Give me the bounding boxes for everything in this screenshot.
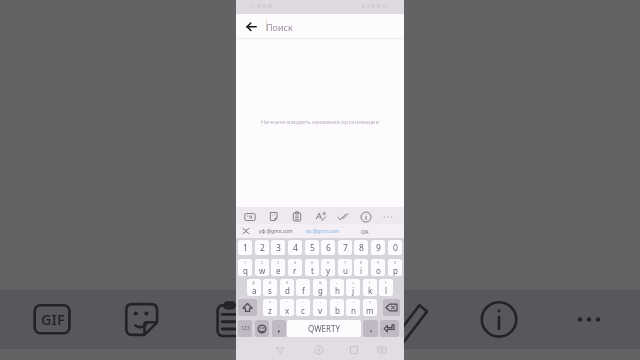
button[interactable]: ; xyxy=(330,299,344,316)
staticText: ) xyxy=(385,280,387,285)
staticText: j xyxy=(352,285,355,296)
staticText: d xyxy=(285,285,290,296)
button[interactable]: : xyxy=(313,299,327,316)
staticText: 3 xyxy=(277,260,280,265)
staticText: Начните вводить название организации xyxy=(236,118,404,126)
button[interactable]: QWERTY xyxy=(287,320,361,337)
button[interactable]: - xyxy=(330,279,344,296)
staticText: 2 xyxy=(260,242,265,254)
staticText: n xyxy=(351,305,356,316)
staticText: $ xyxy=(286,280,289,285)
button[interactable]: Recents xyxy=(344,340,364,360)
staticText: _ xyxy=(302,280,304,285)
button[interactable]: & xyxy=(313,279,327,296)
button[interactable]: Spell check xyxy=(334,208,351,225)
button[interactable]: 5 xyxy=(305,240,319,255)
button[interactable]: 3 xyxy=(271,259,285,276)
button[interactable]: " xyxy=(280,299,294,316)
staticText: + xyxy=(352,280,355,285)
button[interactable]: ) xyxy=(379,279,393,296)
button[interactable]: 7 xyxy=(338,259,352,276)
button[interactable]: 6 xyxy=(321,240,335,255)
button[interactable]: Clipboard xyxy=(288,208,305,225)
button[interactable]: хо.@gmx.com xyxy=(306,228,340,235)
button[interactable]: Period xyxy=(363,320,378,337)
button[interactable]: $ xyxy=(280,279,294,296)
button[interactable]: 1 xyxy=(238,240,252,255)
button[interactable]: More xyxy=(379,208,396,225)
staticText: 123 xyxy=(241,325,250,332)
staticText: q xyxy=(243,265,248,276)
button[interactable]: Symbols xyxy=(238,320,252,337)
button[interactable]: 0 xyxy=(388,259,402,276)
button[interactable]: уф.@gmx.com xyxy=(259,228,293,235)
staticText: 7 xyxy=(344,260,347,265)
button[interactable]: Shift xyxy=(238,299,257,316)
button[interactable]: _ xyxy=(296,279,310,296)
button[interactable]: 4 xyxy=(288,259,302,276)
button[interactable]: + xyxy=(346,279,360,296)
button[interactable]: Home xyxy=(309,340,329,360)
staticText: " xyxy=(286,300,288,305)
button[interactable]: 5 xyxy=(305,259,319,276)
staticText: 8 xyxy=(359,242,364,254)
button[interactable]: Back xyxy=(240,15,262,37)
staticText: 5 xyxy=(310,242,315,254)
button[interactable]: ? xyxy=(363,299,377,316)
button[interactable]: * xyxy=(263,299,277,316)
button[interactable]: 9 xyxy=(371,240,385,255)
button[interactable]: Stickers xyxy=(265,208,282,225)
button[interactable]: 9 xyxy=(371,259,385,276)
staticText: 4 xyxy=(294,260,297,265)
button[interactable]: 8 xyxy=(354,259,368,276)
staticText: 2 xyxy=(261,260,264,265)
button[interactable]: ! xyxy=(346,299,360,316)
staticText: ! xyxy=(353,300,354,305)
button[interactable]: Поиск xyxy=(266,14,293,39)
staticText: i xyxy=(360,265,363,276)
button[interactable]: GIF xyxy=(241,208,258,225)
button[interactable]: 2 xyxy=(255,259,269,276)
button[interactable]: 1 xyxy=(238,259,252,276)
staticText: k xyxy=(368,285,373,296)
staticText: t xyxy=(311,265,314,276)
staticText: u xyxy=(343,265,348,276)
staticText: GIF xyxy=(41,309,65,329)
staticText: 0 xyxy=(394,260,397,265)
staticText: 3 xyxy=(276,242,281,254)
staticText: 9 xyxy=(376,242,381,254)
button[interactable]: Emoji xyxy=(255,320,269,337)
button[interactable]: 8 xyxy=(354,240,368,255)
staticText: w xyxy=(259,265,266,276)
staticText: s xyxy=(268,285,272,296)
staticText: f xyxy=(302,285,305,296)
button[interactable]: Info xyxy=(357,208,374,225)
staticText: 0 xyxy=(393,242,398,254)
staticText: # xyxy=(269,280,272,285)
staticText: * xyxy=(269,300,271,305)
button[interactable]: # xyxy=(263,279,277,296)
button[interactable]: ( xyxy=(363,279,377,296)
button[interactable]: Translate xyxy=(312,208,329,225)
button[interactable]: Back xyxy=(272,340,292,360)
button[interactable]: Comma xyxy=(272,320,286,337)
button[interactable]: 0 xyxy=(388,240,402,255)
staticText: 5 xyxy=(311,260,314,265)
button[interactable]: 4 xyxy=(288,240,302,255)
button[interactable]: 2 xyxy=(255,240,269,255)
staticText: h xyxy=(335,285,340,296)
staticText: y xyxy=(326,265,331,276)
button[interactable]: Hide keyboard xyxy=(372,340,392,360)
button[interactable]: ' xyxy=(296,299,310,316)
button[interactable]: 6 xyxy=(321,259,335,276)
staticText: : xyxy=(320,300,321,305)
button[interactable]: Enter xyxy=(380,320,399,337)
button[interactable]: 3 xyxy=(271,240,285,255)
button[interactable]: Collapse xyxy=(240,225,252,237)
button[interactable]: @ xyxy=(247,279,261,296)
staticText: @ xyxy=(252,280,256,285)
button[interactable]: OK xyxy=(361,228,369,235)
staticText: 6 xyxy=(327,260,330,265)
button[interactable]: Backspace xyxy=(383,299,400,316)
button[interactable]: 7 xyxy=(338,240,352,255)
